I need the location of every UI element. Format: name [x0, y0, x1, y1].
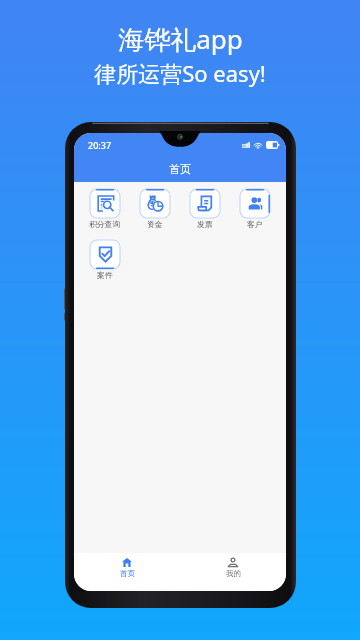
button[interactable]: 发票: [180, 189, 230, 229]
staticText: 发票: [197, 219, 213, 229]
button[interactable]: 案件: [80, 240, 130, 280]
staticText: 20:37: [88, 139, 112, 151]
staticText: 律所运营So easy!: [94, 58, 266, 88]
staticText: 积分查询: [89, 219, 121, 229]
staticText: 案件: [97, 270, 113, 280]
staticText: 客户: [247, 219, 263, 229]
staticText: 资金: [147, 219, 163, 229]
staticText: 首页: [169, 162, 191, 176]
staticText: 我的: [226, 569, 241, 578]
button[interactable]: 我的: [180, 553, 286, 591]
button[interactable]: 资金: [130, 189, 180, 229]
staticText: 首页: [120, 569, 135, 578]
button[interactable]: 积分查询: [80, 189, 130, 229]
staticText: 海铧礼app: [118, 21, 243, 57]
button[interactable]: 首页: [74, 553, 180, 591]
button[interactable]: 客户: [230, 189, 280, 229]
